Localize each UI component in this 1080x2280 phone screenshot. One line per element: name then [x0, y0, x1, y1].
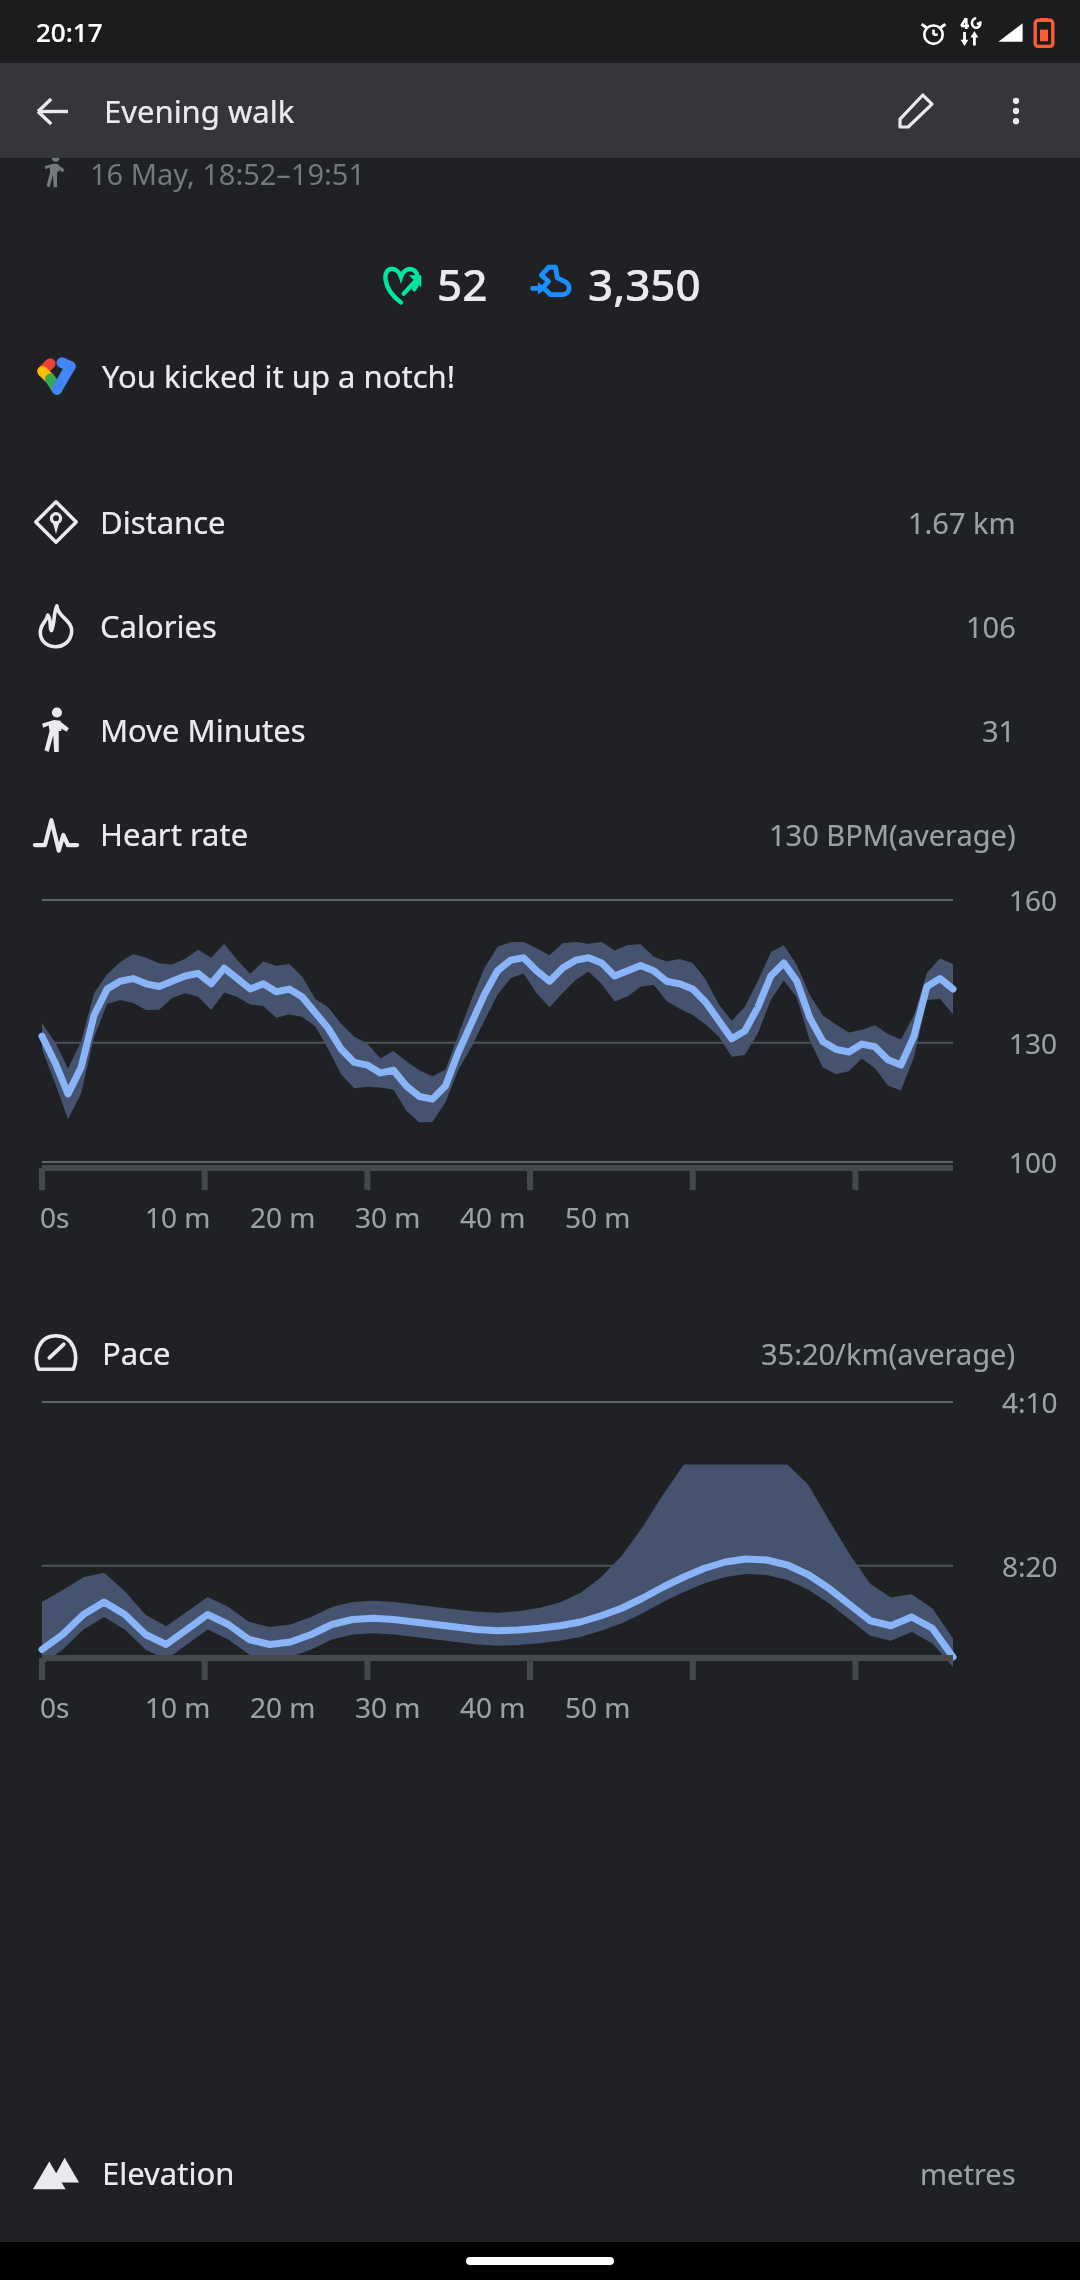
button[interactable]: Move Minutes	[0, 678, 1080, 782]
staticText: 106	[966, 607, 1016, 646]
staticText: Distance	[100, 501, 226, 543]
staticText: Move Minutes	[100, 709, 306, 751]
staticText: Elevation	[102, 2152, 235, 2194]
staticText: 10 m	[145, 1688, 211, 1726]
staticText: 8:20	[1002, 1547, 1058, 1585]
button[interactable]: You kicked it up a notch!	[0, 344, 1080, 408]
staticText: Pace	[102, 1332, 171, 1374]
staticText: You kicked it up a notch!	[102, 355, 456, 397]
staticText: Calories	[100, 605, 217, 647]
staticText: 10 m	[145, 1198, 211, 1236]
button[interactable]: Calories	[0, 574, 1080, 678]
staticText: Heart rate	[100, 813, 249, 855]
staticText: 40 m	[460, 1688, 526, 1726]
staticText: 4:10	[1002, 1383, 1058, 1421]
staticText: 0s	[40, 1688, 70, 1726]
button[interactable]: Distance	[0, 470, 1080, 574]
staticText: 30 m	[355, 1198, 421, 1236]
staticText: 100	[1009, 1143, 1058, 1181]
button[interactable]: More options	[980, 75, 1052, 147]
button[interactable]: Back	[20, 79, 84, 143]
staticText: 50 m	[565, 1688, 631, 1726]
staticText: 40 m	[460, 1198, 526, 1236]
staticText: metres	[920, 2154, 1016, 2193]
staticText: 52	[437, 254, 488, 314]
staticText: 130 BPM(average)	[769, 815, 1016, 854]
staticText: 20 m	[250, 1198, 316, 1236]
button[interactable]: Elevation	[0, 2136, 1080, 2210]
staticText: 20:17	[36, 14, 103, 49]
staticText: 16 May, 18:52–19:51	[90, 154, 365, 193]
staticText: 31	[982, 711, 1016, 750]
button[interactable]: Pace	[0, 1322, 1080, 1384]
staticText: 160	[1009, 881, 1058, 919]
button[interactable]: Edit	[880, 75, 952, 147]
staticText: Evening walk	[104, 90, 295, 132]
staticText: 130	[1009, 1024, 1058, 1062]
staticText: 0s	[40, 1198, 70, 1236]
staticText: 20 m	[250, 1688, 316, 1726]
staticText: 3,350	[588, 254, 701, 314]
staticText: 50 m	[565, 1198, 631, 1236]
staticText: 30 m	[355, 1688, 421, 1726]
button[interactable]: Heart rate	[0, 782, 1080, 886]
staticText: 35:20/km(average)	[761, 1334, 1016, 1373]
staticText: 1.67 km	[908, 503, 1016, 542]
